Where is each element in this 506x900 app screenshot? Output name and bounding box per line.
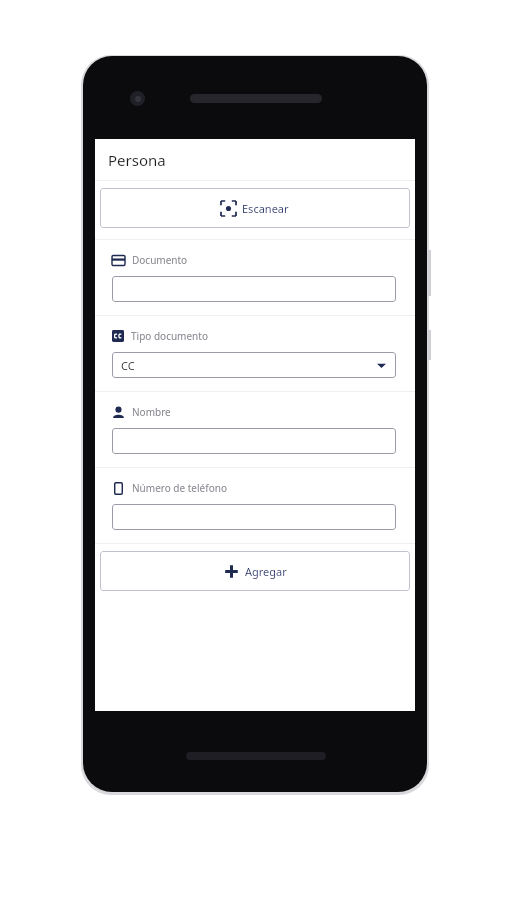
button[interactable]: CC <box>112 352 396 378</box>
button[interactable] <box>112 504 396 530</box>
button[interactable] <box>112 276 396 302</box>
staticText: Tipo documento <box>131 329 208 343</box>
staticText: CC <box>121 358 135 373</box>
staticText: Persona <box>108 150 166 170</box>
other: Agregar <box>224 564 239 579</box>
button[interactable]: Escanear <box>100 188 410 228</box>
staticText: Documento <box>132 253 188 267</box>
staticText: Nombre <box>132 405 171 419</box>
other: Escanear <box>221 201 236 216</box>
staticText: Agregar <box>245 564 287 579</box>
staticText: Escanear <box>242 201 289 216</box>
button[interactable] <box>112 428 396 454</box>
staticText: Número de teléfono <box>132 481 227 495</box>
button[interactable]: Agregar <box>100 551 410 591</box>
